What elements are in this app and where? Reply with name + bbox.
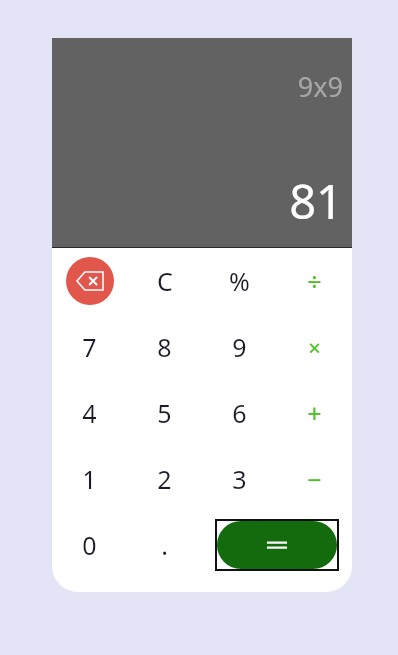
staticText: 0	[82, 528, 97, 562]
button[interactable]: +	[277, 380, 352, 446]
staticText: %	[229, 264, 250, 298]
button[interactable]: C	[127, 248, 202, 314]
staticText: 6	[232, 396, 247, 430]
staticText: +	[307, 396, 322, 430]
button[interactable]: 9	[202, 314, 277, 380]
staticText: 2	[157, 462, 172, 496]
button[interactable]: 5	[127, 380, 202, 446]
staticText: 8	[157, 330, 172, 364]
staticText: 5	[157, 396, 172, 430]
button[interactable]: ×	[277, 314, 352, 380]
button[interactable]: %	[202, 248, 277, 314]
staticText: .	[161, 528, 168, 562]
staticText: ÷	[307, 264, 322, 298]
button[interactable]: Equals	[215, 519, 339, 571]
staticText: C	[157, 264, 173, 298]
staticText: 4	[82, 396, 97, 430]
button[interactable]: 7	[52, 314, 127, 380]
staticText: 9x9	[297, 68, 343, 105]
staticText: 9	[232, 330, 247, 364]
staticText: 81	[289, 169, 343, 233]
button[interactable]: ÷	[277, 248, 352, 314]
staticText: ×	[308, 332, 321, 362]
button[interactable]: Backspace, clear entry	[52, 248, 127, 314]
button[interactable]: .	[127, 512, 202, 578]
button[interactable]: 6	[202, 380, 277, 446]
staticText: 3	[232, 462, 247, 496]
button[interactable]: 2	[127, 446, 202, 512]
button[interactable]: −	[277, 446, 352, 512]
button[interactable]: 1	[52, 446, 127, 512]
button[interactable]: 8	[127, 314, 202, 380]
staticText: −	[307, 462, 322, 496]
button[interactable]: 0	[52, 512, 127, 578]
button[interactable]: 4	[52, 380, 127, 446]
staticText: 1	[82, 462, 97, 496]
staticText: 7	[82, 330, 97, 364]
button[interactable]: 3	[202, 446, 277, 512]
